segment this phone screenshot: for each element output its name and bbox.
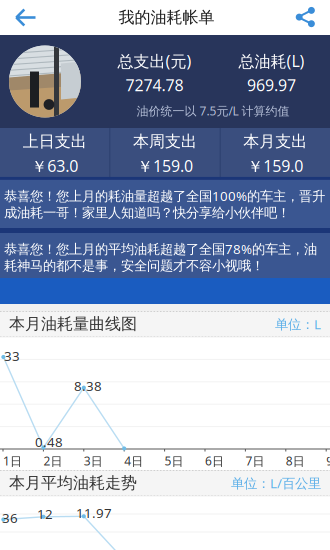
staticText: 1日 (3, 453, 22, 469)
staticText: 本月平均油耗走势 (9, 473, 137, 493)
button[interactable]: Back (0, 1, 51, 34)
staticText: 本周支出 (133, 131, 197, 151)
staticText: 我的油耗帐单 (118, 8, 214, 27)
staticText: 0.48 (35, 433, 63, 451)
staticText: 6日 (205, 453, 224, 469)
staticText: 3日 (84, 453, 103, 469)
staticText: 969.97 (247, 74, 296, 96)
staticText: 油价统一以 7.5元/L 计算约值 (136, 103, 289, 119)
staticText: ￥159.0 (247, 155, 303, 176)
button[interactable]: 本周支出 (110, 128, 220, 180)
staticText: ￥63.0 (31, 155, 78, 176)
button[interactable]: 上日支出 (0, 128, 109, 180)
staticText: 总支出(元) (117, 50, 191, 71)
staticText: 8日 (286, 453, 305, 469)
staticText: 36 (2, 509, 18, 527)
staticText: 11.97 (76, 504, 112, 522)
staticText: 9日 (326, 453, 330, 484)
staticText: 恭喜您！您上月的耗油量超越了全国100%的车主，晋升成油耗一哥！家里人知道吗？快… (4, 187, 325, 221)
staticText: 单位：L/百公里 (231, 474, 321, 492)
staticText: 7日 (245, 453, 264, 469)
staticText: 8.38 (74, 377, 102, 395)
staticText: 本月油耗量曲线图 (9, 314, 137, 334)
staticText: 33 (4, 347, 20, 365)
staticText: 5日 (165, 453, 184, 469)
staticText: ￥159.0 (137, 155, 193, 176)
staticText: 7274.78 (125, 74, 183, 96)
button[interactable]: Share (282, 1, 330, 34)
staticText: 4日 (124, 453, 143, 469)
staticText: 恭喜您！您上月的平均油耗超越了全国78%的车主，油耗神马的都不是事，安全问题才不… (4, 240, 317, 274)
staticText: 12 (37, 505, 53, 523)
staticText: 上日支出 (23, 131, 87, 151)
staticText: 单位：L (275, 315, 321, 333)
staticText: 2日 (43, 453, 62, 469)
staticText: 总油耗(L) (238, 50, 304, 71)
staticText: 本月支出 (243, 131, 307, 151)
button[interactable]: 本月支出 (221, 128, 330, 180)
